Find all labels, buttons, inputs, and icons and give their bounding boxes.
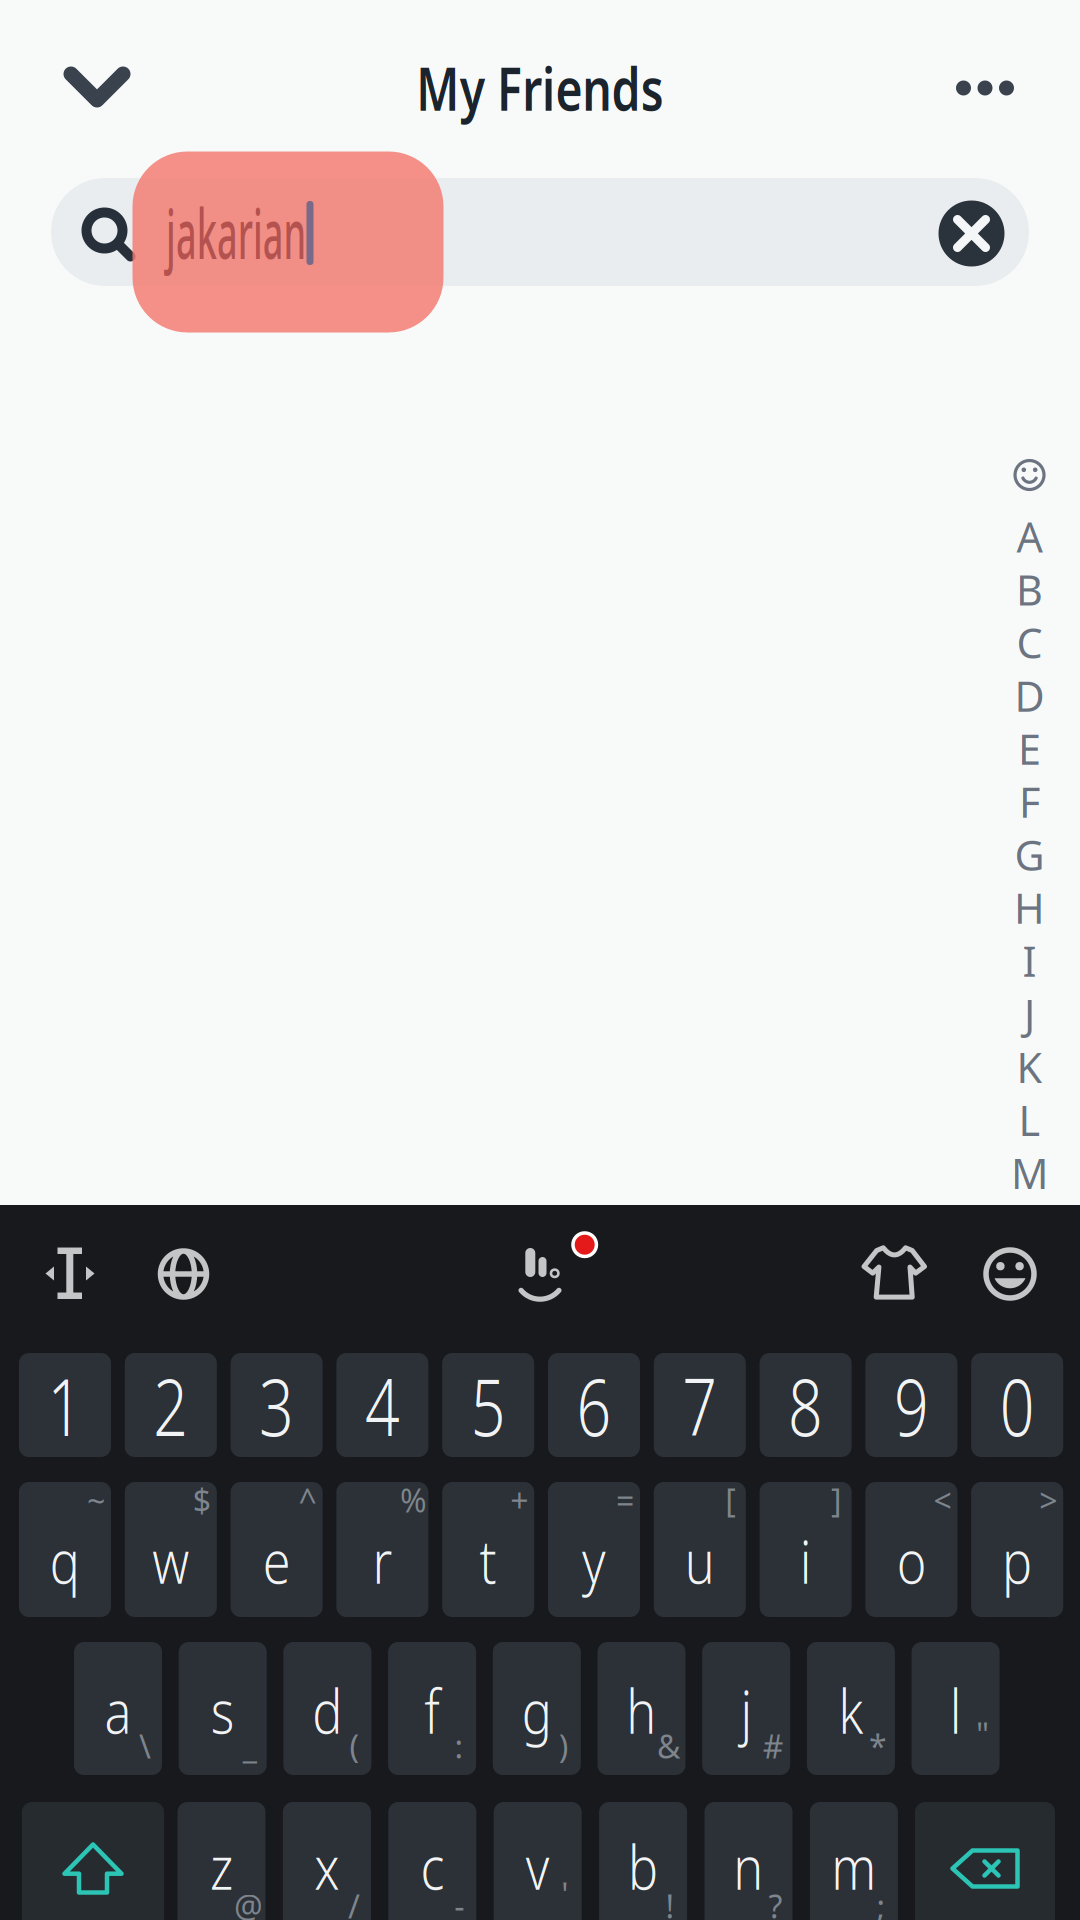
- button[interactable]: 0: [971, 1353, 1063, 1457]
- staticText: n: [730, 1825, 767, 1907]
- button[interactable]: 8: [760, 1353, 852, 1457]
- staticText: \: [139, 1725, 151, 1767]
- staticText: &: [657, 1725, 680, 1767]
- staticText: 3: [254, 1352, 300, 1458]
- button[interactable]: Clear search: [931, 193, 1011, 273]
- button[interactable]: 6: [548, 1353, 640, 1457]
- button[interactable]: r: [336, 1482, 428, 1617]
- button[interactable]: Delete: [915, 1802, 1055, 1920]
- button[interactable]: I: [1007, 936, 1051, 986]
- button[interactable]: F: [1007, 777, 1051, 827]
- button[interactable]: Switch language: [138, 1219, 228, 1329]
- button[interactable]: Shift: [22, 1802, 164, 1920]
- staticText: C: [1016, 615, 1042, 670]
- button[interactable]: Emoji section: [1007, 453, 1051, 497]
- button[interactable]: L: [1007, 1095, 1051, 1145]
- staticText: +: [510, 1479, 528, 1521]
- button[interactable]: h: [597, 1642, 685, 1775]
- button[interactable]: e: [231, 1482, 323, 1617]
- button[interactable]: B: [1007, 564, 1051, 614]
- button[interactable]: Emoji: [965, 1219, 1055, 1329]
- staticText: q: [46, 1519, 83, 1601]
- button[interactable]: b: [599, 1802, 687, 1920]
- staticText: m: [826, 1825, 881, 1907]
- button[interactable]: s: [179, 1642, 267, 1775]
- staticText: [: [725, 1479, 736, 1521]
- button[interactable]: 2: [125, 1353, 217, 1457]
- staticText: j: [739, 1669, 753, 1751]
- button[interactable]: n: [704, 1802, 792, 1920]
- staticText: ): [559, 1725, 569, 1767]
- button[interactable]: y: [548, 1482, 640, 1617]
- button[interactable]: TouchPal menu: [480, 1217, 620, 1327]
- button[interactable]: d: [283, 1642, 371, 1775]
- button[interactable]: Themes: [850, 1218, 940, 1328]
- staticText: jakarian: [101, 186, 370, 278]
- button[interactable]: q: [19, 1482, 111, 1617]
- button[interactable]: M: [1007, 1148, 1051, 1198]
- button[interactable]: a: [74, 1642, 162, 1775]
- button[interactable]: c: [388, 1802, 476, 1920]
- button[interactable]: 5: [442, 1353, 534, 1457]
- button[interactable]: 4: [336, 1353, 428, 1457]
- staticText: s: [208, 1669, 237, 1751]
- staticText: M: [1011, 1145, 1048, 1200]
- button[interactable]: 3: [231, 1353, 323, 1457]
- staticText: 5: [465, 1352, 511, 1458]
- staticText: z: [207, 1825, 235, 1907]
- button[interactable]: m: [810, 1802, 898, 1920]
- staticText: e: [260, 1519, 294, 1601]
- staticText: G: [1014, 827, 1044, 882]
- staticText: v: [523, 1825, 552, 1907]
- button[interactable]: Text editing: [25, 1218, 115, 1328]
- button[interactable]: w: [125, 1482, 217, 1617]
- staticText: K: [1016, 1039, 1042, 1094]
- staticText: c: [418, 1825, 447, 1907]
- staticText: k: [836, 1669, 866, 1751]
- staticText: (: [349, 1725, 359, 1767]
- button[interactable]: o: [865, 1482, 957, 1617]
- button[interactable]: v: [494, 1802, 582, 1920]
- button[interactable]: 9: [865, 1353, 957, 1457]
- staticText: f: [423, 1669, 442, 1751]
- staticText: -: [454, 1885, 464, 1920]
- staticText: !: [666, 1885, 675, 1920]
- button[interactable]: Dismiss: [45, 57, 149, 117]
- button[interactable]: g: [493, 1642, 581, 1775]
- button[interactable]: G: [1007, 830, 1051, 880]
- button[interactable]: D: [1007, 671, 1051, 721]
- button[interactable]: x: [283, 1802, 371, 1920]
- button[interactable]: H: [1007, 883, 1051, 933]
- staticText: *: [869, 1725, 887, 1767]
- button[interactable]: l: [912, 1642, 1000, 1775]
- button[interactable]: 7: [654, 1353, 746, 1457]
- staticText: #: [763, 1725, 784, 1767]
- button[interactable]: J: [1007, 989, 1051, 1039]
- button[interactable]: E: [1007, 724, 1051, 774]
- button[interactable]: i: [760, 1482, 852, 1617]
- button[interactable]: j: [702, 1642, 790, 1775]
- button[interactable]: k: [807, 1642, 895, 1775]
- staticText: <: [933, 1479, 951, 1521]
- button[interactable]: u: [654, 1482, 746, 1617]
- staticText: l: [949, 1669, 963, 1751]
- staticText: y: [579, 1519, 608, 1601]
- staticText: ?: [768, 1885, 782, 1920]
- staticText: L: [1018, 1092, 1040, 1147]
- button[interactable]: f: [388, 1642, 476, 1775]
- staticText: B: [1016, 562, 1043, 617]
- staticText: =: [616, 1479, 634, 1521]
- staticText: o: [893, 1519, 929, 1601]
- button[interactable]: 1: [19, 1353, 111, 1457]
- button[interactable]: A: [1007, 511, 1051, 561]
- button[interactable]: p: [971, 1482, 1063, 1617]
- button[interactable]: More options: [935, 58, 1035, 118]
- staticText: F: [1019, 774, 1040, 829]
- staticText: ^: [299, 1479, 317, 1521]
- button[interactable]: t: [442, 1482, 534, 1617]
- staticText: :: [455, 1725, 464, 1767]
- button[interactable]: K: [1007, 1042, 1051, 1092]
- staticText: @: [234, 1885, 263, 1920]
- button[interactable]: z: [177, 1802, 265, 1920]
- button[interactable]: C: [1007, 618, 1051, 668]
